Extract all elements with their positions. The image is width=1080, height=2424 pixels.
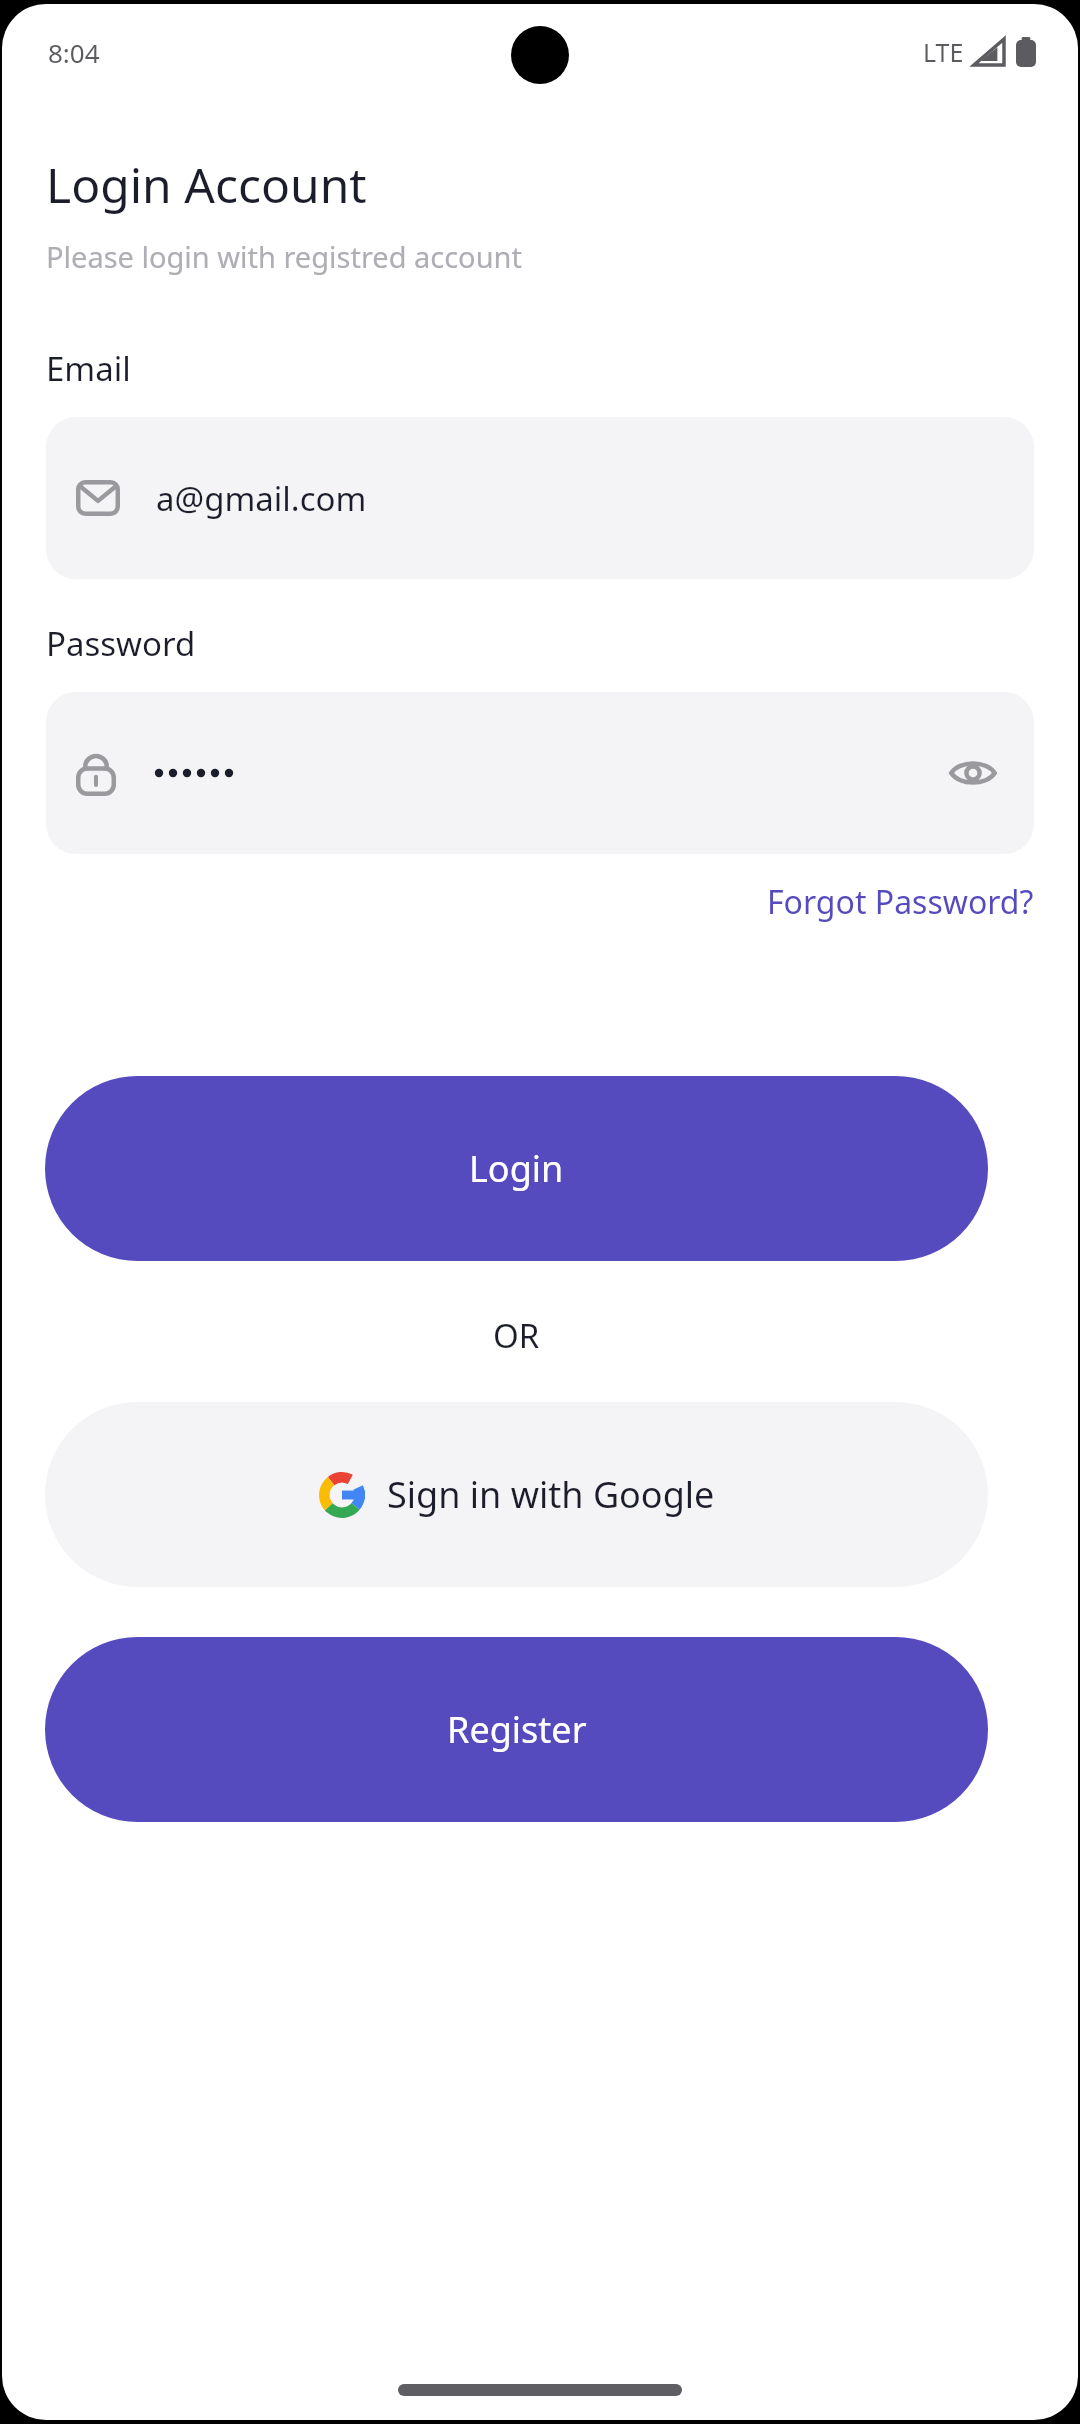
staticText: Register — [447, 1705, 587, 1754]
staticText: a@gmail.com — [156, 476, 367, 521]
staticText: Login Account — [46, 152, 367, 217]
button[interactable]: Show password — [942, 742, 1004, 804]
staticText: Password — [46, 621, 196, 666]
staticText: OR — [493, 1313, 540, 1358]
button[interactable]: Sign in with Google — [45, 1402, 988, 1587]
button[interactable]: Login — [45, 1076, 988, 1261]
button[interactable]: Forgot Password? — [767, 880, 1034, 924]
button[interactable]: Register — [45, 1637, 988, 1822]
button[interactable]: Show password — [46, 692, 1034, 854]
staticText: Email — [46, 346, 131, 391]
staticText: LTE — [923, 35, 964, 69]
staticText: Please login with registred account — [46, 237, 522, 276]
staticText: Sign in with Google — [387, 1470, 715, 1519]
staticText: Login — [469, 1144, 564, 1193]
button[interactable]: a@gmail.com — [46, 417, 1034, 579]
staticText: 8:04 — [48, 35, 100, 70]
